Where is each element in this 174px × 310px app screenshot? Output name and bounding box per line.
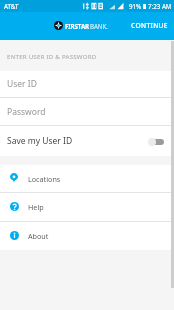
staticText: AT&T [4,2,19,10]
button[interactable]: Password [0,98,174,125]
other: Save my User ID toggle [148,137,164,146]
staticText: Save my User ID [7,135,73,147]
staticText: Locations [28,174,61,184]
button[interactable]: Save my User ID [0,126,174,156]
button[interactable]: About [0,222,174,250]
button[interactable]: Help [0,193,174,221]
staticText: 7:23 AM [148,2,172,10]
button[interactable]: User ID [0,71,174,97]
button[interactable]: Locations [0,165,174,192]
staticText: CONTINUE [131,21,168,30]
staticText: Help [28,202,44,212]
staticText: 91% [129,2,142,10]
staticText: FIRSTAR [65,22,90,30]
staticText: Password [7,106,46,118]
staticText: User ID [7,78,37,90]
button[interactable]: CONTINUE [125,14,174,37]
staticText: ENTER USER ID & PASSWORD [7,52,97,60]
staticText: BANK. [90,22,108,30]
staticText: About [28,231,49,241]
